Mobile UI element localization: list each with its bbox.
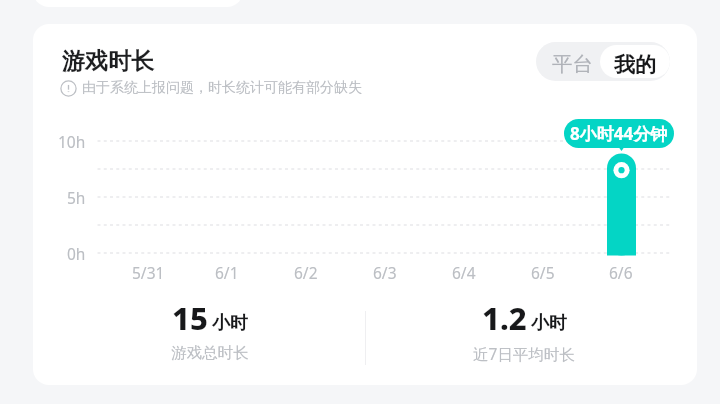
- staticText: 由于系统上报问题，时长统计可能有部分缺失: [82, 79, 362, 97]
- staticText: 小时: [212, 312, 248, 335]
- staticText: 我的: [614, 52, 656, 78]
- staticText: 小时: [531, 312, 567, 335]
- button[interactable]: 1.2: [369, 297, 679, 364]
- staticText: 15: [172, 297, 208, 339]
- staticText: 5/31: [132, 262, 165, 282]
- button[interactable]: 15: [55, 297, 365, 363]
- staticText: 6/6: [609, 262, 633, 282]
- button[interactable]: 8小时44分钟: [564, 119, 674, 148]
- staticText: 6/4: [452, 262, 476, 282]
- staticText: 游戏总时长: [171, 343, 249, 363]
- staticText: 近7日平均时长: [473, 343, 575, 364]
- button[interactable]: 平台: [536, 44, 608, 81]
- staticText: 6/3: [373, 262, 397, 282]
- staticText: 5h: [67, 187, 86, 208]
- staticText: 6/2: [294, 262, 318, 282]
- staticText: 1.2: [482, 297, 527, 339]
- staticText: 6/1: [215, 262, 239, 282]
- button[interactable]: 我的: [600, 45, 670, 78]
- staticText: 6/5: [531, 262, 555, 282]
- staticText: 8小时44分钟: [570, 122, 668, 145]
- staticText: 平台: [552, 51, 593, 77]
- staticText: 0h: [67, 243, 86, 264]
- staticText: 10h: [58, 131, 86, 152]
- staticText: 游戏时长: [62, 47, 154, 76]
